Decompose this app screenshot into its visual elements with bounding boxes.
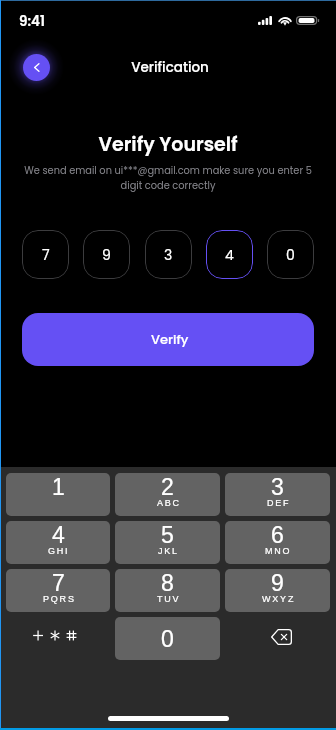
button[interactable]: 3 xyxy=(145,230,192,279)
staticText: 6 xyxy=(271,522,284,548)
staticText: TUV xyxy=(157,594,181,604)
staticText: 1 xyxy=(52,474,65,500)
staticText: GHI xyxy=(48,546,70,556)
staticText: MNO xyxy=(265,546,292,556)
button[interactable]: 2 xyxy=(115,473,220,516)
button[interactable]: 5 xyxy=(115,521,220,564)
button[interactable]: 9 xyxy=(83,230,130,279)
button[interactable]: Back xyxy=(23,54,50,81)
button[interactable]: Verify xyxy=(22,313,314,366)
button[interactable]: 6 xyxy=(225,521,330,564)
button[interactable]: 0 xyxy=(267,230,314,279)
button[interactable]: Symbols xyxy=(6,617,110,660)
button[interactable]: 7 xyxy=(22,230,69,279)
button[interactable]: 7 xyxy=(6,569,110,612)
staticText: 7 xyxy=(52,570,65,596)
button[interactable]: 4 xyxy=(206,230,253,279)
button[interactable]: 9 xyxy=(225,569,330,612)
staticText: Verify Yourself xyxy=(0,131,336,158)
staticText: Verification xyxy=(2,58,336,77)
button[interactable]: Backspace xyxy=(225,617,330,660)
button[interactable]: 3 xyxy=(225,473,330,516)
staticText: ABC xyxy=(157,498,181,508)
staticText: DEF xyxy=(267,498,291,508)
staticText: 3 xyxy=(271,474,284,500)
staticText: 7 xyxy=(42,245,50,265)
staticText: 5 xyxy=(161,522,174,548)
staticText: We send email on ui***@gmail.com make su… xyxy=(20,164,316,193)
staticText: 9:41 xyxy=(19,12,45,31)
button[interactable]: 0 xyxy=(115,617,220,660)
staticText: 0 xyxy=(161,626,174,652)
staticText: 4 xyxy=(52,522,65,548)
button[interactable]: 4 xyxy=(6,521,110,564)
staticText: PQRS xyxy=(43,594,76,604)
staticText: 9 xyxy=(271,570,284,596)
staticText: Verify xyxy=(151,330,189,348)
button[interactable]: 8 xyxy=(115,569,220,612)
staticText: JKL xyxy=(158,546,179,556)
staticText: 8 xyxy=(161,570,174,596)
staticText: 2 xyxy=(161,474,174,500)
staticText: 0 xyxy=(286,245,295,265)
button[interactable]: 1 xyxy=(6,473,110,516)
staticText: WXYZ xyxy=(262,594,296,604)
staticText: 9 xyxy=(102,245,111,265)
staticText: 4 xyxy=(225,245,234,265)
staticText: 3 xyxy=(164,245,173,265)
